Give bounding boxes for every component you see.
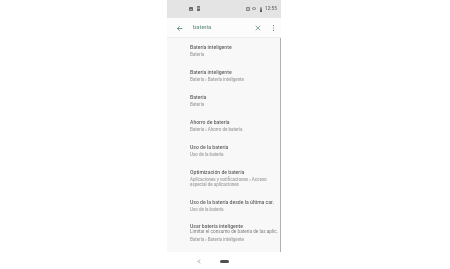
staticText: batería [193,24,212,31]
button[interactable]: Ahorro de batería [167,119,281,132]
staticText: especial de aplicaciones [190,182,239,187]
staticText: 12:55 [265,6,277,12]
staticText: Uso de la batería [190,144,229,150]
staticText: Ahorro de batería [190,119,230,125]
staticText: Uso de la batería [190,207,224,212]
staticText: Limitar el consumo de batería de las apl… [190,229,278,235]
staticText: Optimización de batería [190,169,245,175]
button[interactable]: Home [220,260,229,263]
button[interactable]: Batería inteligente [167,44,281,57]
button[interactable]: Uso de la batería desde la última car. [167,199,281,212]
button[interactable]: Usar batería inteligente [167,223,281,242]
button[interactable]: Batería inteligente [167,69,281,82]
button[interactable]: Uso de la batería [167,144,281,157]
staticText: Uso de la batería [190,152,224,157]
staticText: Batería › Batería inteligente [190,77,244,82]
staticText: Batería inteligente [190,44,232,50]
button[interactable]: Back [172,21,186,35]
button[interactable]: More options [266,21,280,35]
staticText: Batería [190,94,207,100]
staticText: Batería [190,102,205,107]
staticText: Uso de la batería desde la última car. [190,199,274,205]
staticText: Batería inteligente [190,69,232,75]
button[interactable]: Clear search [251,21,265,35]
staticText: Usar batería inteligente [190,223,244,229]
staticText: Batería › Ahorro de batería [190,127,243,132]
staticText: Aplicaciones y notificaciones › Acceso [190,177,267,182]
staticText: Batería [190,52,205,57]
staticText: Batería › Batería inteligente [190,237,244,242]
button[interactable]: Optimización de batería [167,169,281,187]
button[interactable]: Batería [167,94,281,107]
button[interactable]: Back [193,256,204,267]
